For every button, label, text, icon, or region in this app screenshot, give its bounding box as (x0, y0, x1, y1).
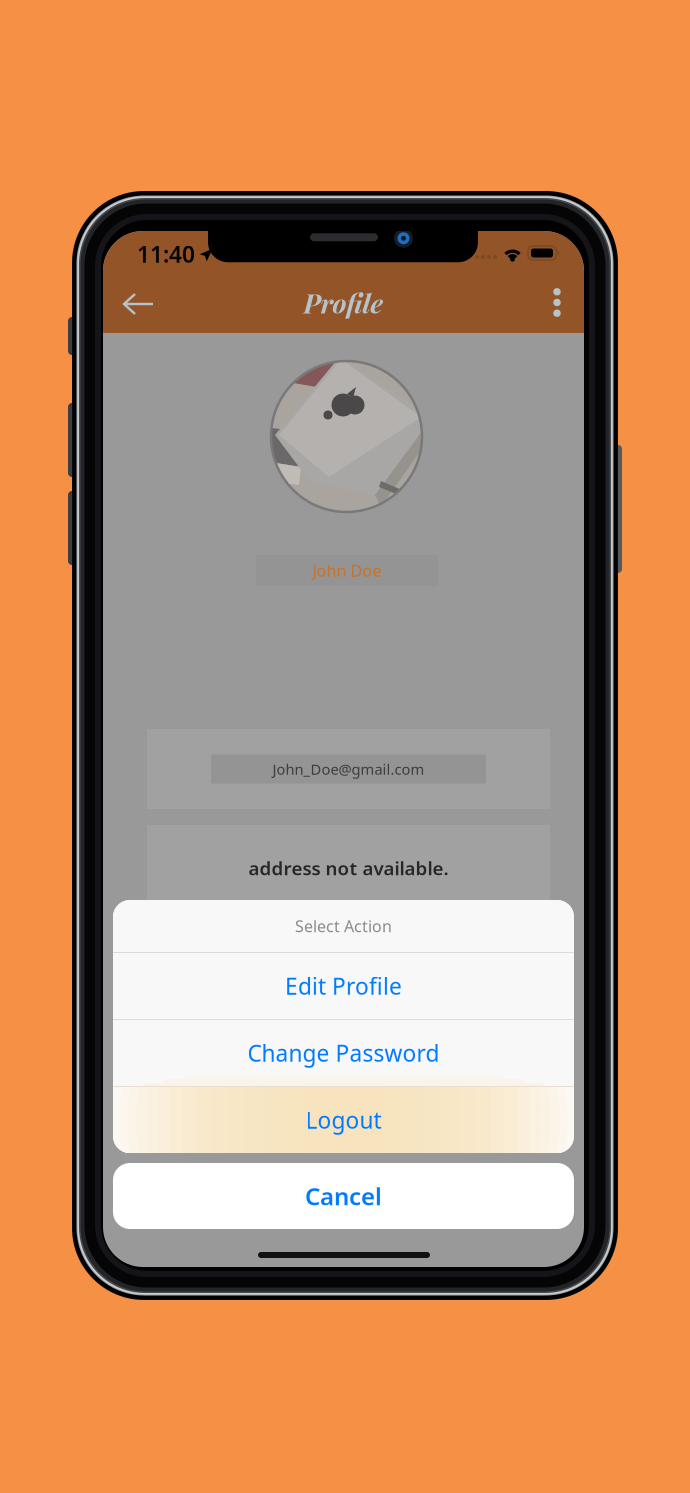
staticText: Logout (305, 1105, 381, 1135)
staticText: Cancel (305, 1180, 382, 1212)
staticText: address not available. (248, 856, 448, 880)
staticText: 11:40 (137, 239, 195, 269)
button[interactable]: Change Password (113, 1020, 574, 1086)
staticText: Profile (303, 285, 383, 320)
button[interactable]: Back (103, 272, 173, 333)
button[interactable]: More options (531, 272, 584, 333)
staticText: John_Doe@gmail.com (272, 759, 424, 779)
staticText: Change Password (247, 1038, 439, 1068)
button[interactable]: Edit Profile (113, 953, 574, 1019)
button[interactable]: Cancel (113, 1163, 574, 1229)
staticText: Select Action (295, 915, 392, 937)
staticText: John Doe (312, 560, 381, 581)
staticText: Edit Profile (285, 971, 402, 1001)
button[interactable]: Logout (113, 1087, 574, 1153)
